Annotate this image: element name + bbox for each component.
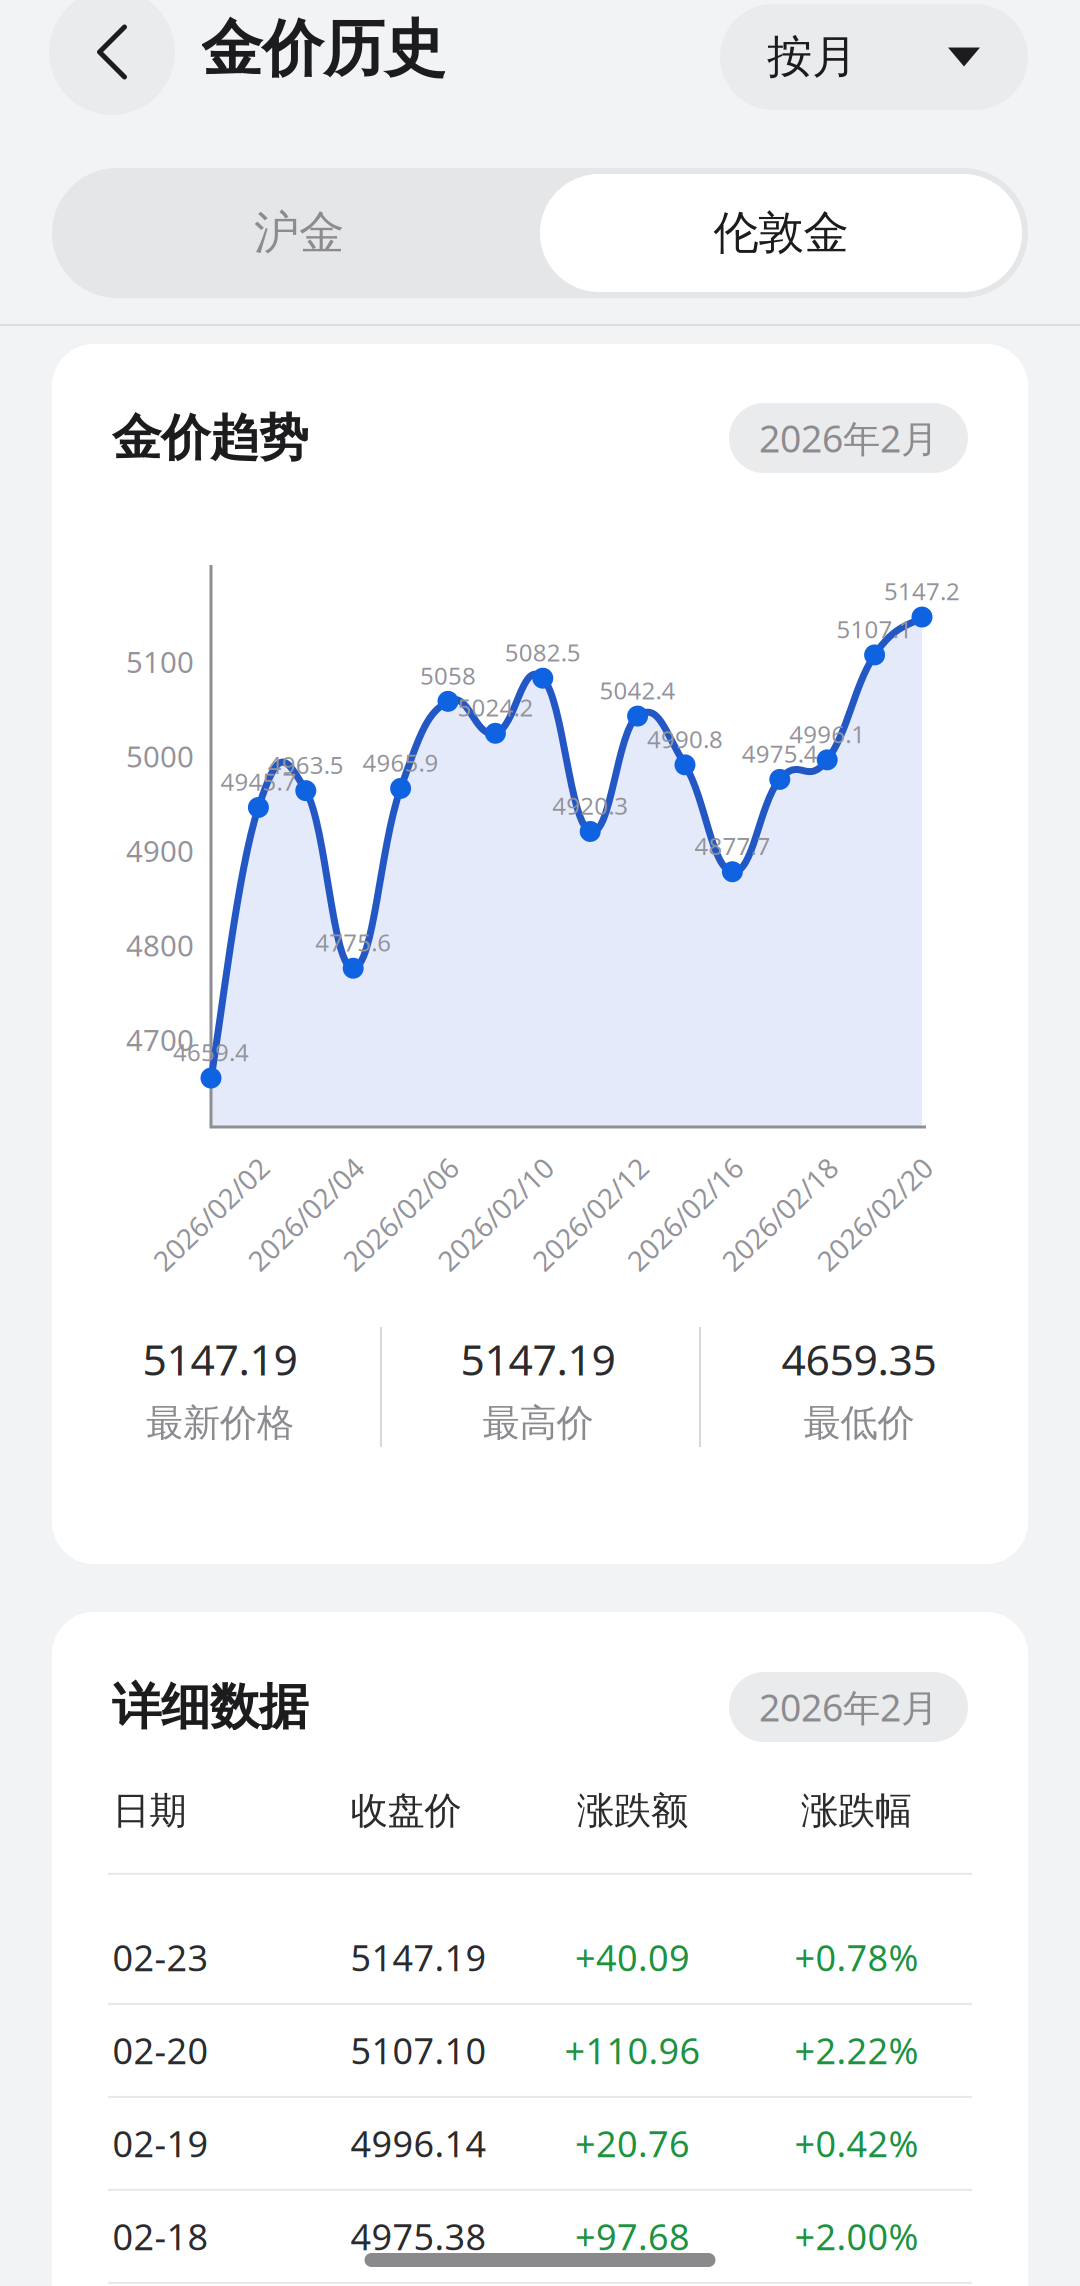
staticText: +97.68 [575, 2212, 690, 2260]
button[interactable]: 伦敦金 [540, 174, 1022, 292]
staticText: 涨跌幅 [801, 1788, 912, 1834]
button[interactable]: 02-18 [52, 2191, 1027, 2282]
staticText: 4996.1 [789, 718, 865, 750]
staticText: 日期 [112, 1788, 186, 1834]
staticText: 4900 [126, 831, 194, 870]
staticText: 5107.10 [350, 2026, 486, 2074]
staticText: 02-18 [112, 2212, 208, 2260]
staticText: 2026/02/16 [611, 1195, 759, 1233]
button[interactable]: 按月 [720, 4, 1028, 110]
staticText: 4975.4 [742, 737, 818, 769]
staticText: 5147.19 [460, 1331, 615, 1387]
staticText: +110.96 [564, 2026, 700, 2074]
staticText: 最新价格 [146, 1400, 294, 1446]
staticText: 4659.4 [173, 1036, 249, 1068]
staticText: 2026/02/02 [137, 1195, 285, 1233]
staticText: +0.78% [794, 1933, 918, 1981]
staticText: 金价趋势 [112, 408, 308, 468]
staticText: 收盘价 [350, 1788, 461, 1834]
staticText: 5000 [126, 737, 194, 776]
staticText: 02-20 [112, 2026, 208, 2074]
staticText: 最低价 [803, 1400, 914, 1446]
button[interactable]: 02-20 [52, 2005, 1027, 2096]
staticText: 4700 [126, 1020, 194, 1059]
staticText: 4800 [126, 926, 194, 965]
button[interactable]: 02-19 [52, 2098, 1027, 2189]
staticText: 涨跌额 [577, 1788, 688, 1834]
staticText: 按月 [767, 29, 857, 85]
staticText: 2026/02/10 [421, 1195, 569, 1233]
staticText: 5147.19 [350, 1933, 486, 1981]
staticText: 伦敦金 [713, 205, 848, 261]
staticText: 02-23 [112, 1933, 208, 1981]
staticText: +2.22% [794, 2026, 918, 2074]
button[interactable]: 02-23 [52, 1912, 1027, 2003]
staticText: 2026/02/18 [706, 1195, 854, 1233]
staticText: 2026年2月 [759, 1682, 938, 1732]
staticText: 4775.6 [315, 926, 391, 958]
staticText: 4996.14 [350, 2119, 486, 2167]
staticText: +20.76 [575, 2119, 690, 2167]
staticText: 4945.7 [220, 765, 296, 797]
staticText: 金价历史 [201, 11, 445, 87]
staticText: 4965.9 [363, 746, 439, 778]
staticText: 4975.38 [350, 2212, 486, 2260]
staticText: 5082.5 [505, 636, 581, 668]
staticText: +0.42% [794, 2119, 918, 2167]
staticText: 2026/02/20 [801, 1195, 949, 1233]
staticText: 5042.4 [600, 674, 676, 706]
staticText: 5024.2 [457, 691, 533, 723]
staticText: 02-19 [112, 2119, 208, 2167]
staticText: 4659.35 [781, 1331, 936, 1387]
staticText: 5147.2 [884, 575, 960, 607]
staticText: 2026年2月 [759, 413, 938, 463]
staticText: 4963.5 [268, 749, 344, 781]
button[interactable]: Back [49, 0, 175, 115]
staticText: 5058 [420, 659, 476, 691]
staticText: +2.00% [794, 2212, 918, 2260]
staticText: 4877.7 [694, 830, 770, 862]
staticText: 4990.8 [647, 723, 723, 755]
staticText: 5107.1 [837, 613, 913, 645]
staticText: 4920.3 [552, 789, 628, 821]
staticText: 最高价 [482, 1400, 593, 1446]
staticText: 2026/02/04 [232, 1195, 380, 1233]
staticText: 5147.19 [142, 1331, 297, 1387]
staticText: 沪金 [254, 205, 344, 261]
staticText: 2026/02/12 [516, 1195, 664, 1233]
staticText: +40.09 [575, 1933, 690, 1981]
staticText: 2026/02/06 [327, 1195, 475, 1233]
staticText: 详细数据 [112, 1677, 308, 1737]
button[interactable]: 沪金 [58, 174, 540, 292]
staticText: 5100 [126, 642, 194, 681]
